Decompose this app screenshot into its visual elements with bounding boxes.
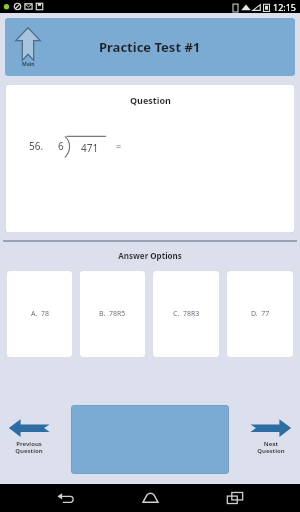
staticText: 471 bbox=[81, 141, 99, 155]
staticText: C. 78R3 bbox=[173, 309, 200, 319]
button[interactable]: Recent apps bbox=[215, 484, 255, 512]
staticText: 56. bbox=[29, 139, 44, 153]
button[interactable]: Next Question bbox=[250, 418, 292, 455]
staticText: 6 bbox=[58, 139, 64, 153]
staticText: Answer Options bbox=[118, 250, 182, 261]
button[interactable]: Home bbox=[130, 484, 170, 512]
staticText: 12:15 bbox=[273, 1, 297, 13]
staticText: B. 78R5 bbox=[99, 309, 126, 319]
staticText: Next Question bbox=[257, 440, 285, 455]
staticText: Question bbox=[130, 94, 171, 106]
staticText: Previous Question bbox=[15, 440, 43, 455]
button[interactable]: Back bbox=[45, 484, 85, 512]
staticText: D. 77 bbox=[251, 309, 270, 319]
staticText: = bbox=[116, 140, 122, 152]
staticText: Main bbox=[22, 61, 35, 68]
staticText: A. 78 bbox=[31, 309, 49, 319]
button[interactable]: C. 78R3 bbox=[152, 270, 220, 358]
button[interactable]: Question bbox=[5, 84, 295, 233]
button[interactable]: Previous Question bbox=[8, 418, 50, 455]
button[interactable]: D. 77 bbox=[226, 270, 294, 358]
button[interactable]: A. 78 bbox=[6, 270, 73, 358]
button[interactable]: Main bbox=[5, 18, 295, 76]
button[interactable]: Main bbox=[15, 27, 41, 68]
button[interactable]: B. 78R5 bbox=[79, 270, 146, 358]
staticText: Practice Test #1 bbox=[99, 38, 201, 56]
